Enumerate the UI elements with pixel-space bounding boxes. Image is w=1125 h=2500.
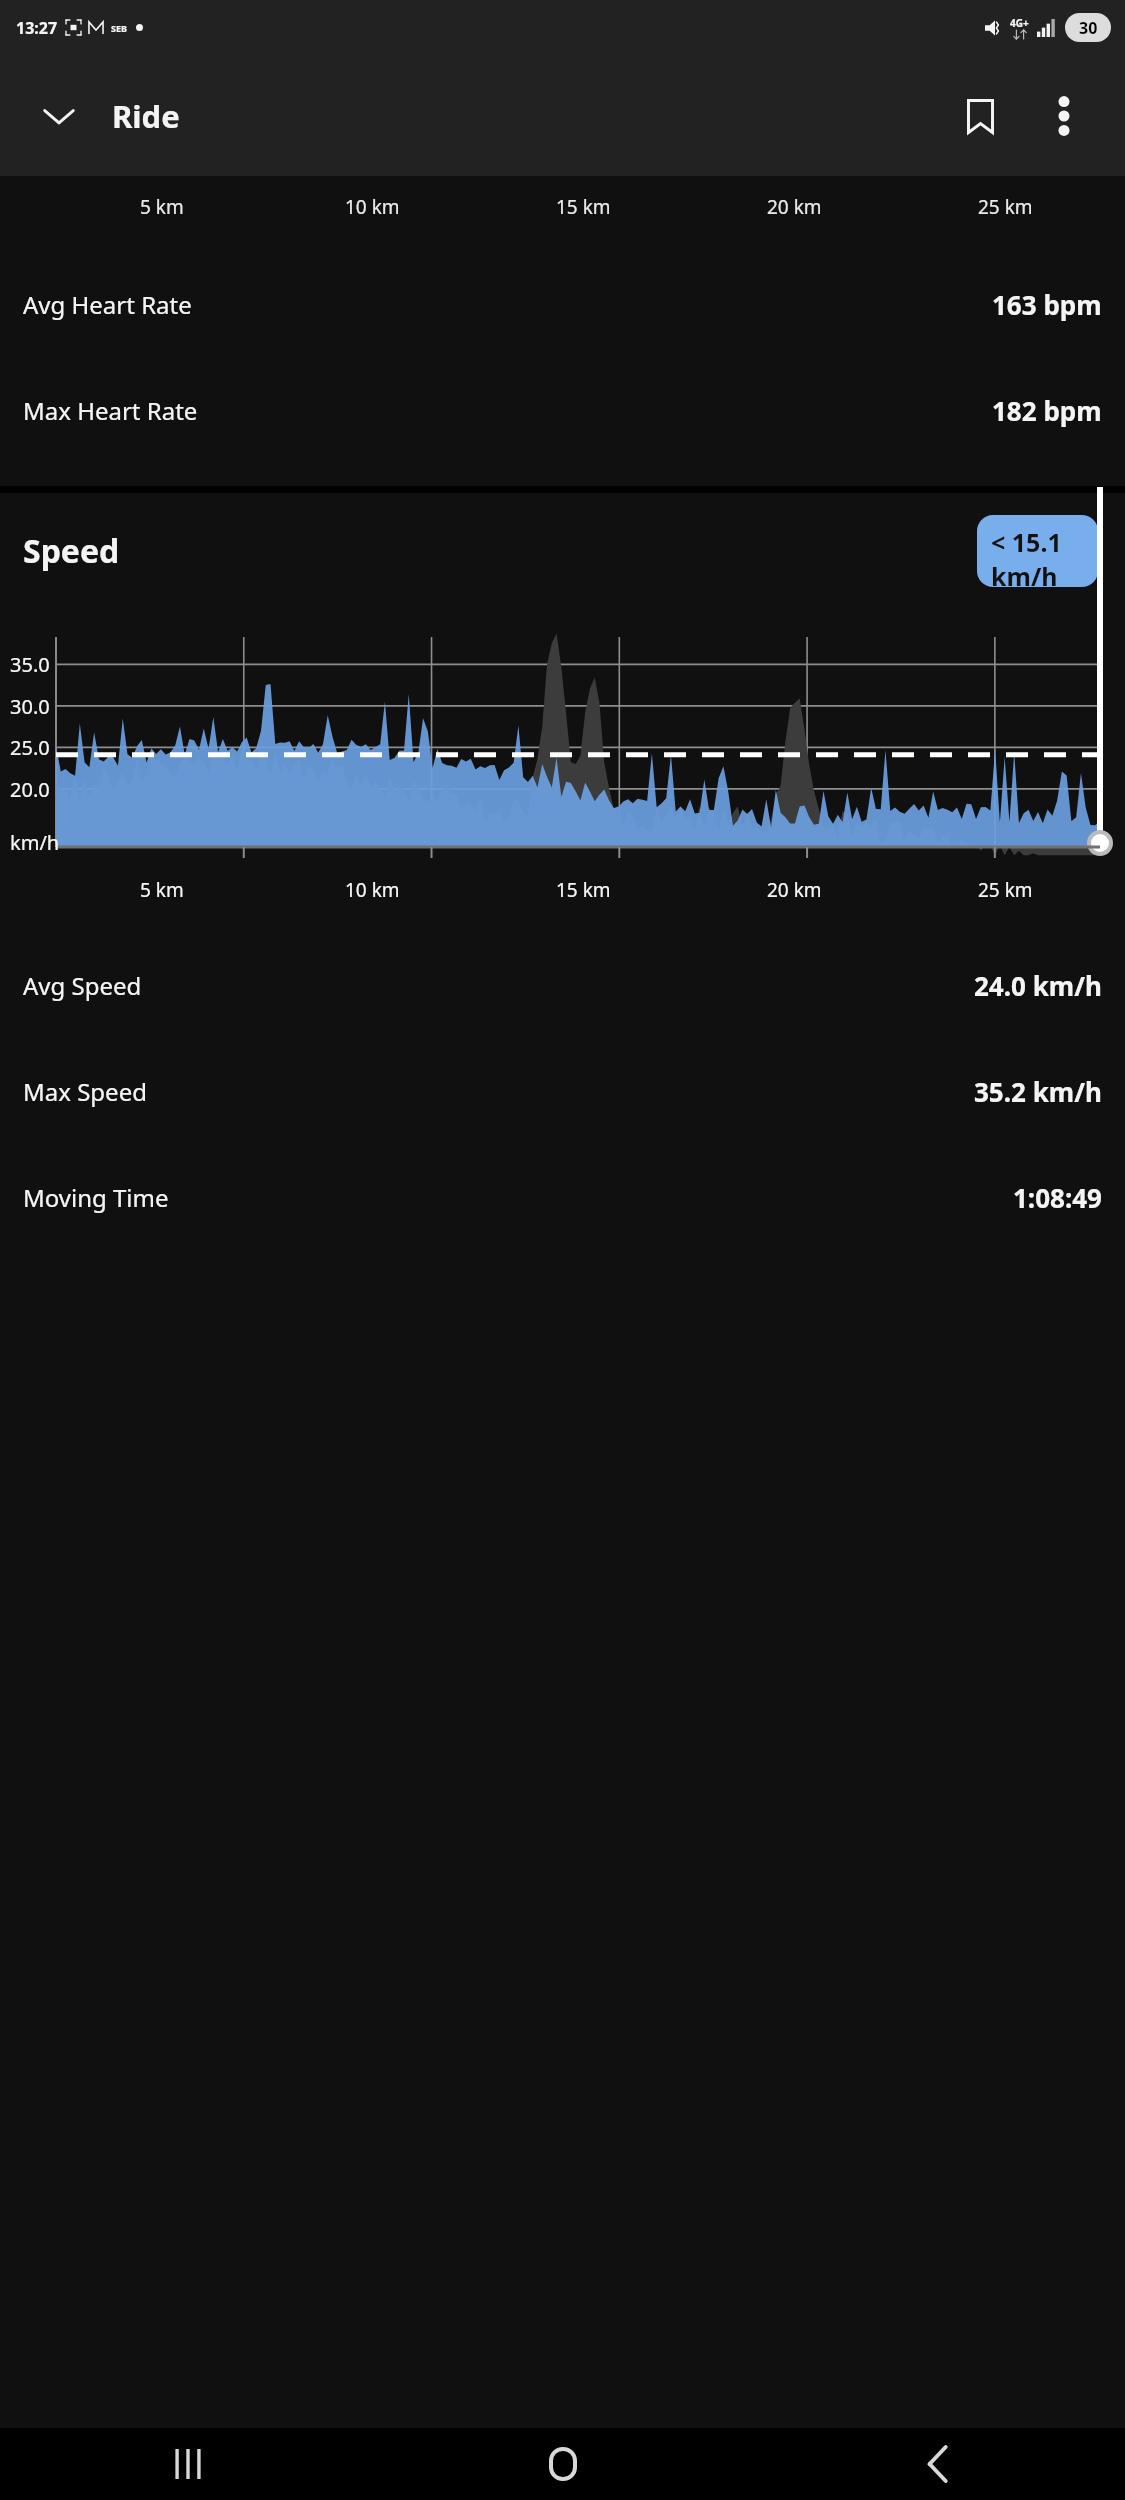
button[interactable]: Max Speed bbox=[0, 1045, 1125, 1137]
staticText: Avg Heart Rate bbox=[23, 288, 192, 321]
staticText: Max Speed bbox=[23, 1075, 147, 1108]
staticText: 20 km bbox=[767, 877, 822, 903]
staticText: 30.0 bbox=[10, 693, 50, 720]
button[interactable]: Recents bbox=[0, 2428, 375, 2500]
staticText: 20 km bbox=[767, 194, 822, 220]
button[interactable]: Moving Time bbox=[0, 1151, 1125, 1243]
staticText: SEB bbox=[111, 22, 127, 34]
staticText: 1:08:49 bbox=[1013, 1180, 1102, 1215]
staticText: Speed bbox=[23, 529, 120, 573]
staticText: 15 km bbox=[556, 877, 611, 903]
staticText: 25 km bbox=[978, 194, 1033, 220]
staticText: 35.2 km/h bbox=[974, 1074, 1102, 1109]
staticText: Moving Time bbox=[23, 1181, 169, 1214]
button[interactable]: Collapse bbox=[30, 87, 88, 145]
button[interactable]: Back bbox=[750, 2428, 1125, 2500]
button[interactable]: Max Heart Rate bbox=[0, 364, 1125, 456]
staticText: 10 km bbox=[345, 877, 400, 903]
staticText: Avg Speed bbox=[23, 969, 142, 1002]
staticText: 35.0 bbox=[10, 651, 50, 678]
button[interactable]: Avg Heart Rate bbox=[0, 258, 1125, 350]
staticText: < 15.1 km/h bbox=[991, 525, 1098, 587]
staticText: 24.0 km/h bbox=[974, 968, 1102, 1003]
staticText: 5 km bbox=[140, 877, 184, 903]
staticText: 25 km bbox=[978, 877, 1033, 903]
staticText: 15 km bbox=[556, 194, 611, 220]
staticText: Ride bbox=[112, 95, 180, 137]
staticText: 25.0 bbox=[10, 734, 50, 761]
button[interactable]: Home bbox=[375, 2428, 750, 2500]
staticText: km/h bbox=[10, 829, 60, 856]
staticText: 10 km bbox=[345, 194, 400, 220]
staticText: 182 bpm bbox=[992, 393, 1102, 428]
button[interactable]: Avg Speed bbox=[0, 939, 1125, 1031]
staticText: 163 bpm bbox=[992, 287, 1102, 322]
staticText: 30 bbox=[1079, 17, 1098, 39]
staticText: Max Heart Rate bbox=[23, 394, 198, 427]
staticText: 5 km bbox=[140, 194, 184, 220]
button[interactable]: More options bbox=[1033, 85, 1095, 147]
staticText: 20.0 bbox=[10, 776, 50, 803]
staticText: 4G+ bbox=[1010, 16, 1029, 30]
staticText: 13:27 bbox=[16, 17, 58, 39]
button[interactable]: < 15.1 km/h bbox=[977, 515, 1098, 587]
button[interactable]: Bookmark bbox=[949, 85, 1011, 147]
